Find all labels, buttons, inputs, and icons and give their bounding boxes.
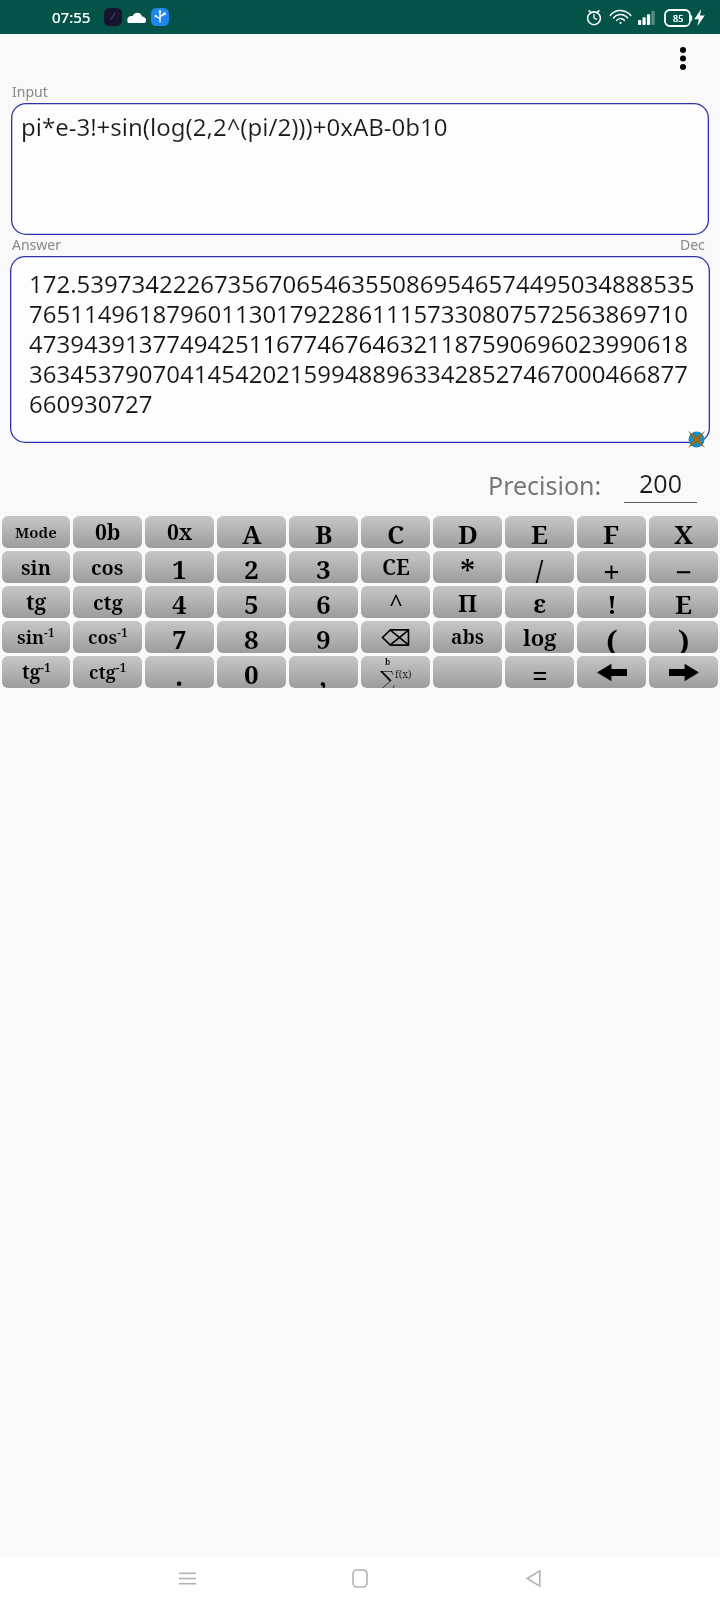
button[interactable]: − xyxy=(649,551,718,583)
staticText: 85 xyxy=(673,12,684,24)
button[interactable]: E xyxy=(649,586,718,618)
staticText: 0x xyxy=(167,518,193,547)
button[interactable]: Resize answer field xyxy=(687,430,706,449)
button[interactable]: abs xyxy=(433,621,502,653)
button[interactable]: 0x xyxy=(145,516,214,548)
staticText: ! xyxy=(607,586,617,618)
staticText: CE xyxy=(382,553,410,582)
staticText: E xyxy=(675,586,692,618)
button[interactable]: ) xyxy=(649,621,718,653)
staticText: D xyxy=(458,516,478,548)
button[interactable]: 3 xyxy=(289,551,358,583)
button[interactable]: ( xyxy=(577,621,646,653)
staticText: F xyxy=(603,516,620,548)
staticText: 200 xyxy=(624,466,697,500)
button[interactable]: Move cursor left xyxy=(577,656,646,688)
button[interactable]: X xyxy=(649,516,718,548)
button[interactable]: ε xyxy=(505,586,574,618)
staticText: 2 xyxy=(244,551,259,583)
button[interactable]: 200 xyxy=(624,466,697,503)
staticText: cos-1 xyxy=(88,624,128,650)
staticText: b xyxy=(385,656,391,667)
button[interactable]: 8 xyxy=(217,621,286,653)
button[interactable]: 172.539734222673567065463550869546574495… xyxy=(10,256,710,443)
button[interactable]: Back xyxy=(510,1557,556,1600)
staticText: 3 xyxy=(316,551,331,583)
button[interactable]: Power xyxy=(361,586,430,618)
staticText: , xyxy=(319,656,328,688)
staticText: ε xyxy=(533,586,547,618)
button[interactable]: 0b xyxy=(73,516,142,548)
button[interactable]: 6 xyxy=(289,586,358,618)
button[interactable]: cos xyxy=(73,551,142,583)
staticText: cos xyxy=(91,554,124,581)
button[interactable]: ctg xyxy=(73,586,142,618)
staticText: Answer xyxy=(12,235,61,254)
staticText: tg xyxy=(26,588,47,617)
button[interactable]: 0 xyxy=(217,656,286,688)
staticText: C xyxy=(387,516,405,548)
button[interactable]: D xyxy=(433,516,502,548)
button[interactable]: / xyxy=(505,551,574,583)
button[interactable]: Home xyxy=(337,1557,383,1600)
button[interactable]: . xyxy=(145,656,214,688)
staticText: sin-1 xyxy=(17,624,55,650)
button[interactable]: Recent apps xyxy=(164,1557,210,1600)
staticText: − xyxy=(675,551,693,583)
button[interactable]: Mode xyxy=(2,516,70,548)
button[interactable]: 9 xyxy=(289,621,358,653)
staticText: Precision: xyxy=(488,468,602,502)
button[interactable]: 2 xyxy=(217,551,286,583)
button[interactable]: П xyxy=(433,586,502,618)
staticText: ∑ xyxy=(380,667,395,688)
staticText: 7 xyxy=(172,621,187,653)
staticText: log xyxy=(523,622,557,652)
button[interactable]: ctg-1 xyxy=(73,656,142,688)
button[interactable]: B xyxy=(289,516,358,548)
button[interactable]: pi*e-3!+sin(log(2,2^(pi/2)))+0xAB-0b10 xyxy=(11,103,709,235)
staticText: ctg-1 xyxy=(89,659,127,685)
staticText: 4 xyxy=(172,586,187,618)
staticText: 0 xyxy=(244,656,259,688)
staticText: 6 xyxy=(316,586,331,618)
button[interactable]: cos-1 xyxy=(73,621,142,653)
button[interactable]: 1 xyxy=(145,551,214,583)
button[interactable]: E xyxy=(505,516,574,548)
button[interactable]: F xyxy=(577,516,646,548)
button[interactable]: , xyxy=(289,656,358,688)
button[interactable]: sin xyxy=(2,551,70,583)
button[interactable]: log xyxy=(505,621,574,653)
staticText: Input xyxy=(12,82,48,101)
staticText: = xyxy=(532,656,548,688)
button[interactable]: 5 xyxy=(217,586,286,618)
button[interactable]: = xyxy=(505,656,574,688)
staticText: abs xyxy=(451,624,484,650)
button[interactable]: Space xyxy=(433,656,502,688)
button[interactable]: * xyxy=(433,551,502,583)
button[interactable]: 4 xyxy=(145,586,214,618)
staticText: ^ xyxy=(389,586,403,618)
button[interactable]: + xyxy=(577,551,646,583)
staticText: + xyxy=(603,551,620,583)
button[interactable]: Move cursor right xyxy=(649,656,718,688)
button[interactable]: 7 xyxy=(145,621,214,653)
button[interactable]: C xyxy=(361,516,430,548)
staticText: 8 xyxy=(244,621,259,653)
staticText: B xyxy=(315,516,333,548)
button[interactable]: sin-1 xyxy=(2,621,70,653)
button[interactable]: tg xyxy=(2,586,70,618)
staticText: 07:55 xyxy=(52,7,91,27)
staticText: Mode xyxy=(15,522,57,542)
button[interactable]: CE xyxy=(361,551,430,583)
button[interactable]: More options xyxy=(665,36,701,80)
staticText: 1 xyxy=(172,551,187,583)
button[interactable]: Sum function xyxy=(361,656,430,688)
staticText: tg-1 xyxy=(22,659,51,685)
staticText: П xyxy=(458,586,478,618)
button[interactable]: Backspace xyxy=(361,621,430,653)
button[interactable]: Dec xyxy=(680,235,705,254)
button[interactable]: tg-1 xyxy=(2,656,70,688)
button[interactable]: ! xyxy=(577,586,646,618)
button[interactable]: A xyxy=(217,516,286,548)
staticText: ) xyxy=(678,621,690,653)
